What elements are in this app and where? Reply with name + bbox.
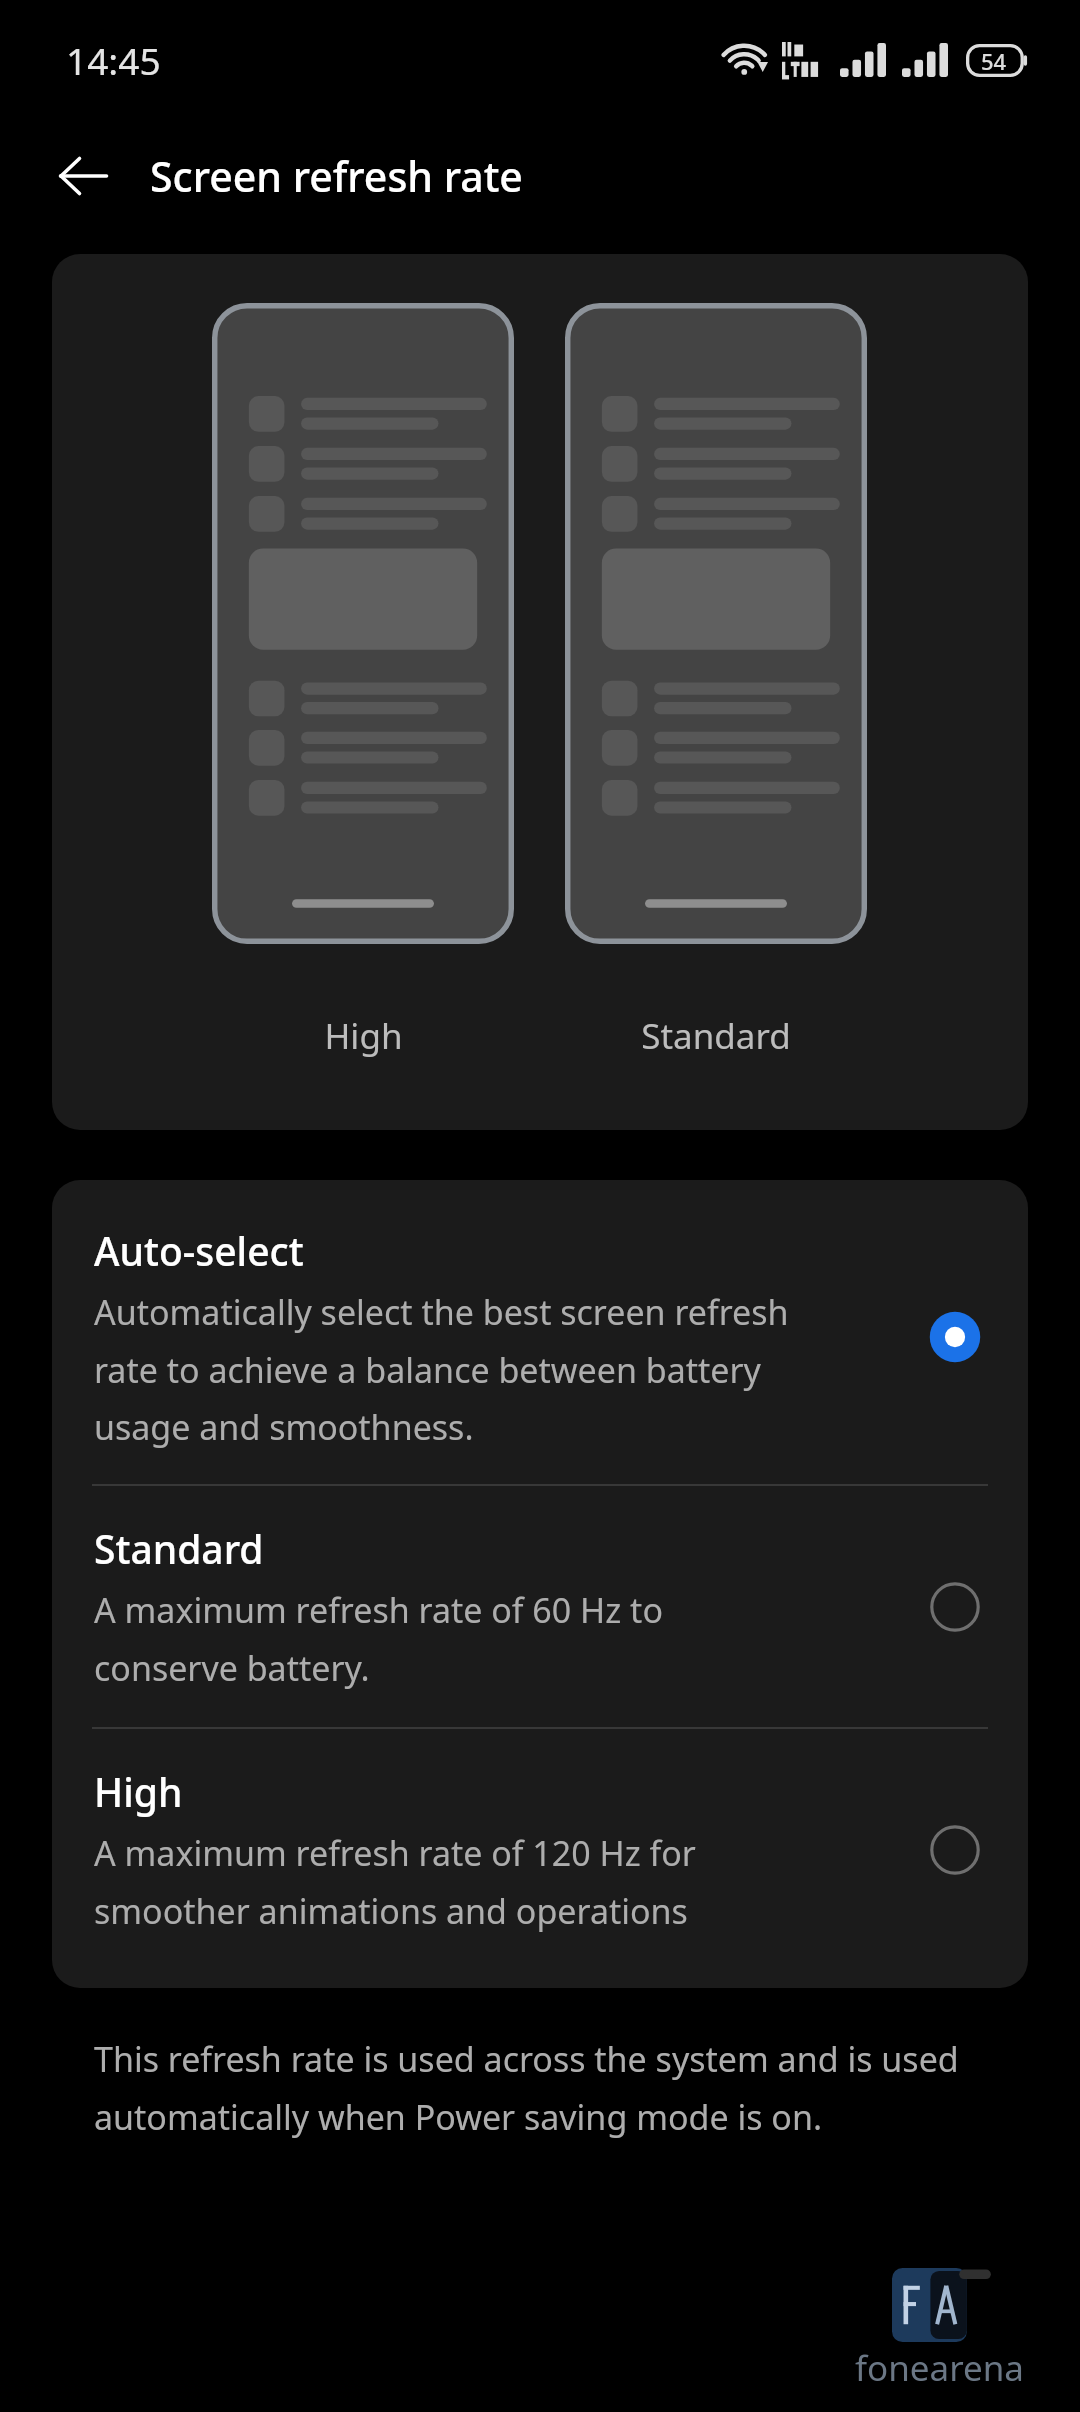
staticText: A maximum refresh rate of 120 Hz for smo…: [94, 1830, 696, 1934]
button[interactable]: Auto-select: [52, 1180, 1028, 1484]
staticText: A maximum refresh rate of 60 Hz to conse…: [94, 1587, 663, 1691]
button[interactable]: High: [52, 1729, 1028, 1988]
staticText: High: [324, 1012, 403, 1060]
button[interactable]: Back: [40, 133, 126, 219]
staticText: This refresh rate is used across the sys…: [94, 2036, 986, 2140]
staticText: Auto-select: [94, 1224, 304, 1277]
staticText: fonearena: [855, 2344, 1024, 2392]
button[interactable]: Standard: [52, 1486, 1028, 1727]
staticText: Standard: [94, 1522, 264, 1575]
staticText: Screen refresh rate: [150, 148, 523, 204]
staticText: Automatically select the best screen ref…: [94, 1289, 789, 1450]
staticText: 54: [981, 46, 1007, 76]
staticText: Standard: [641, 1012, 791, 1060]
staticText: 14:45: [66, 35, 161, 85]
staticText: High: [94, 1765, 183, 1818]
